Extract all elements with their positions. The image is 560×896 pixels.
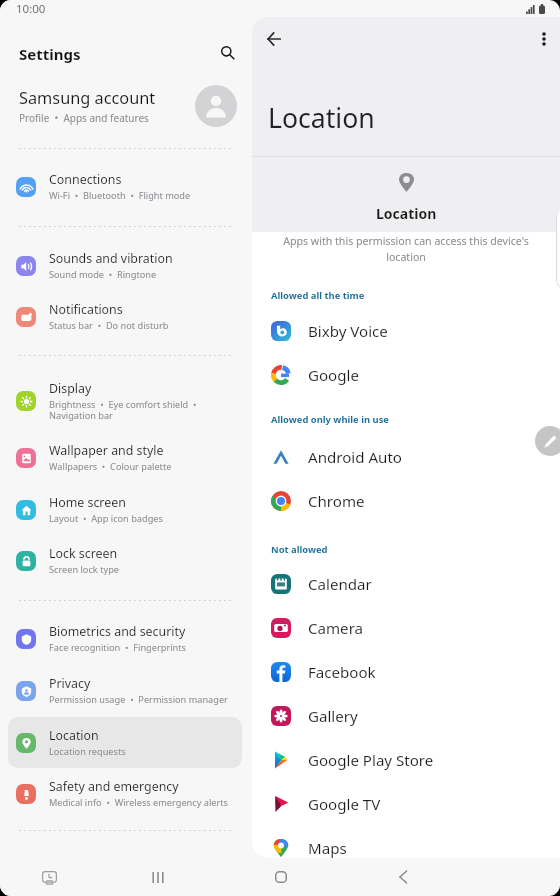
staticText: Chrome (308, 491, 365, 512)
staticText: Display (49, 380, 92, 397)
staticText: Bixby Voice (308, 321, 388, 342)
button[interactable]: Privacy (8, 665, 242, 716)
staticText: Samsung account (19, 87, 156, 109)
staticText: Location requests (49, 745, 126, 758)
staticText: Layout • App icon badges (49, 512, 163, 525)
staticText: Wallpaper and style (49, 442, 164, 459)
button[interactable]: Camera (252, 606, 560, 650)
button[interactable]: Biometrics and security (8, 613, 242, 664)
button[interactable]: Home screen (8, 484, 242, 535)
staticText: Maps (308, 838, 347, 858)
button[interactable]: Google Play Store (252, 738, 560, 782)
button[interactable]: Gallery (252, 694, 560, 738)
staticText: Google TV (308, 794, 381, 815)
staticText: Facebook (308, 662, 376, 683)
button[interactable]: Sounds and vibration (8, 240, 242, 291)
staticText: Location (268, 100, 375, 136)
button[interactable]: Android Auto (252, 435, 560, 479)
staticText: Lock screen (49, 545, 118, 562)
button[interactable]: Google TV (252, 782, 560, 826)
button[interactable]: Samsung account (0, 82, 252, 130)
button[interactable]: Facebook (252, 650, 560, 694)
button[interactable]: More options (527, 22, 560, 56)
button[interactable]: Screen timeout (41, 870, 58, 885)
staticText: Wi-Fi • Bluetooth • Flight mode (49, 189, 191, 202)
staticText: Sounds and vibration (49, 250, 173, 267)
staticText: Face recognition • Fingerprints (49, 641, 186, 654)
button[interactable]: Bixby Voice (252, 309, 560, 353)
staticText: Calendar (308, 574, 372, 595)
button[interactable]: Recent apps (147, 868, 169, 886)
staticText: Medical info • Wireless emergency alerts (49, 796, 228, 809)
staticText: 10:00 (16, 1, 46, 17)
button[interactable]: Wallpaper and style (8, 432, 242, 483)
button[interactable]: Lock screen (8, 535, 242, 586)
staticText: Android Auto (308, 447, 402, 468)
staticText: Not allowed (271, 543, 328, 556)
staticText: Allowed only while in use (271, 413, 389, 426)
staticText: Wallpapers • Colour palette (49, 460, 172, 473)
staticText: Allowed all the time (271, 289, 365, 302)
staticText: Brightness • Eye comfort shield • Naviga… (49, 398, 197, 422)
staticText: Status bar • Do not disturb (49, 319, 169, 332)
staticText: Permission usage • Permission manager (49, 693, 228, 706)
staticText: Apps with this permission can access thi… (264, 234, 548, 264)
button[interactable]: Edge panel (556, 206, 560, 290)
staticText: Settings (19, 44, 81, 64)
button[interactable]: Maps (252, 826, 560, 858)
button[interactable]: Location (8, 717, 242, 768)
button[interactable]: Display (8, 375, 242, 426)
staticText: Google (308, 365, 359, 386)
button[interactable]: Back (257, 22, 291, 56)
staticText: Location (49, 727, 99, 744)
button[interactable]: Connections (8, 161, 242, 212)
staticText: Home screen (49, 494, 126, 511)
staticText: Location (376, 204, 437, 223)
staticText: Sound mode • Ringtone (49, 268, 157, 281)
button[interactable]: Search (212, 37, 244, 69)
staticText: Gallery (308, 706, 358, 727)
staticText: Connections (49, 171, 122, 188)
staticText: Privacy (49, 675, 91, 692)
button[interactable]: Home (270, 868, 292, 886)
button[interactable]: Calendar (252, 562, 560, 606)
staticText: Profile • Apps and features (19, 111, 149, 125)
staticText: Safety and emergency (49, 778, 179, 795)
button[interactable]: Chrome (252, 479, 560, 523)
staticText: Google Play Store (308, 750, 434, 771)
button[interactable]: Edit (535, 426, 560, 456)
staticText: Camera (308, 618, 364, 639)
button[interactable]: Safety and emergency (8, 768, 242, 819)
button[interactable]: Back (392, 868, 414, 886)
button[interactable]: Google (252, 353, 560, 397)
staticText: Biometrics and security (49, 623, 186, 640)
staticText: Notifications (49, 301, 123, 318)
button[interactable]: Notifications (8, 291, 242, 342)
staticText: Screen lock type (49, 563, 119, 576)
